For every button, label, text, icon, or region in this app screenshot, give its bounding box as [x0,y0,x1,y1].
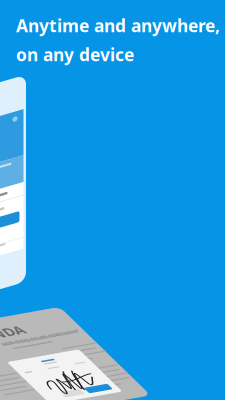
staticText: NDA [0,344,11,363]
staticText: on any device [16,43,134,66]
staticText: Anytime and anywhere, [16,14,220,37]
staticText: NON-DISCLOSURE AGREEMENT [0,364,57,372]
